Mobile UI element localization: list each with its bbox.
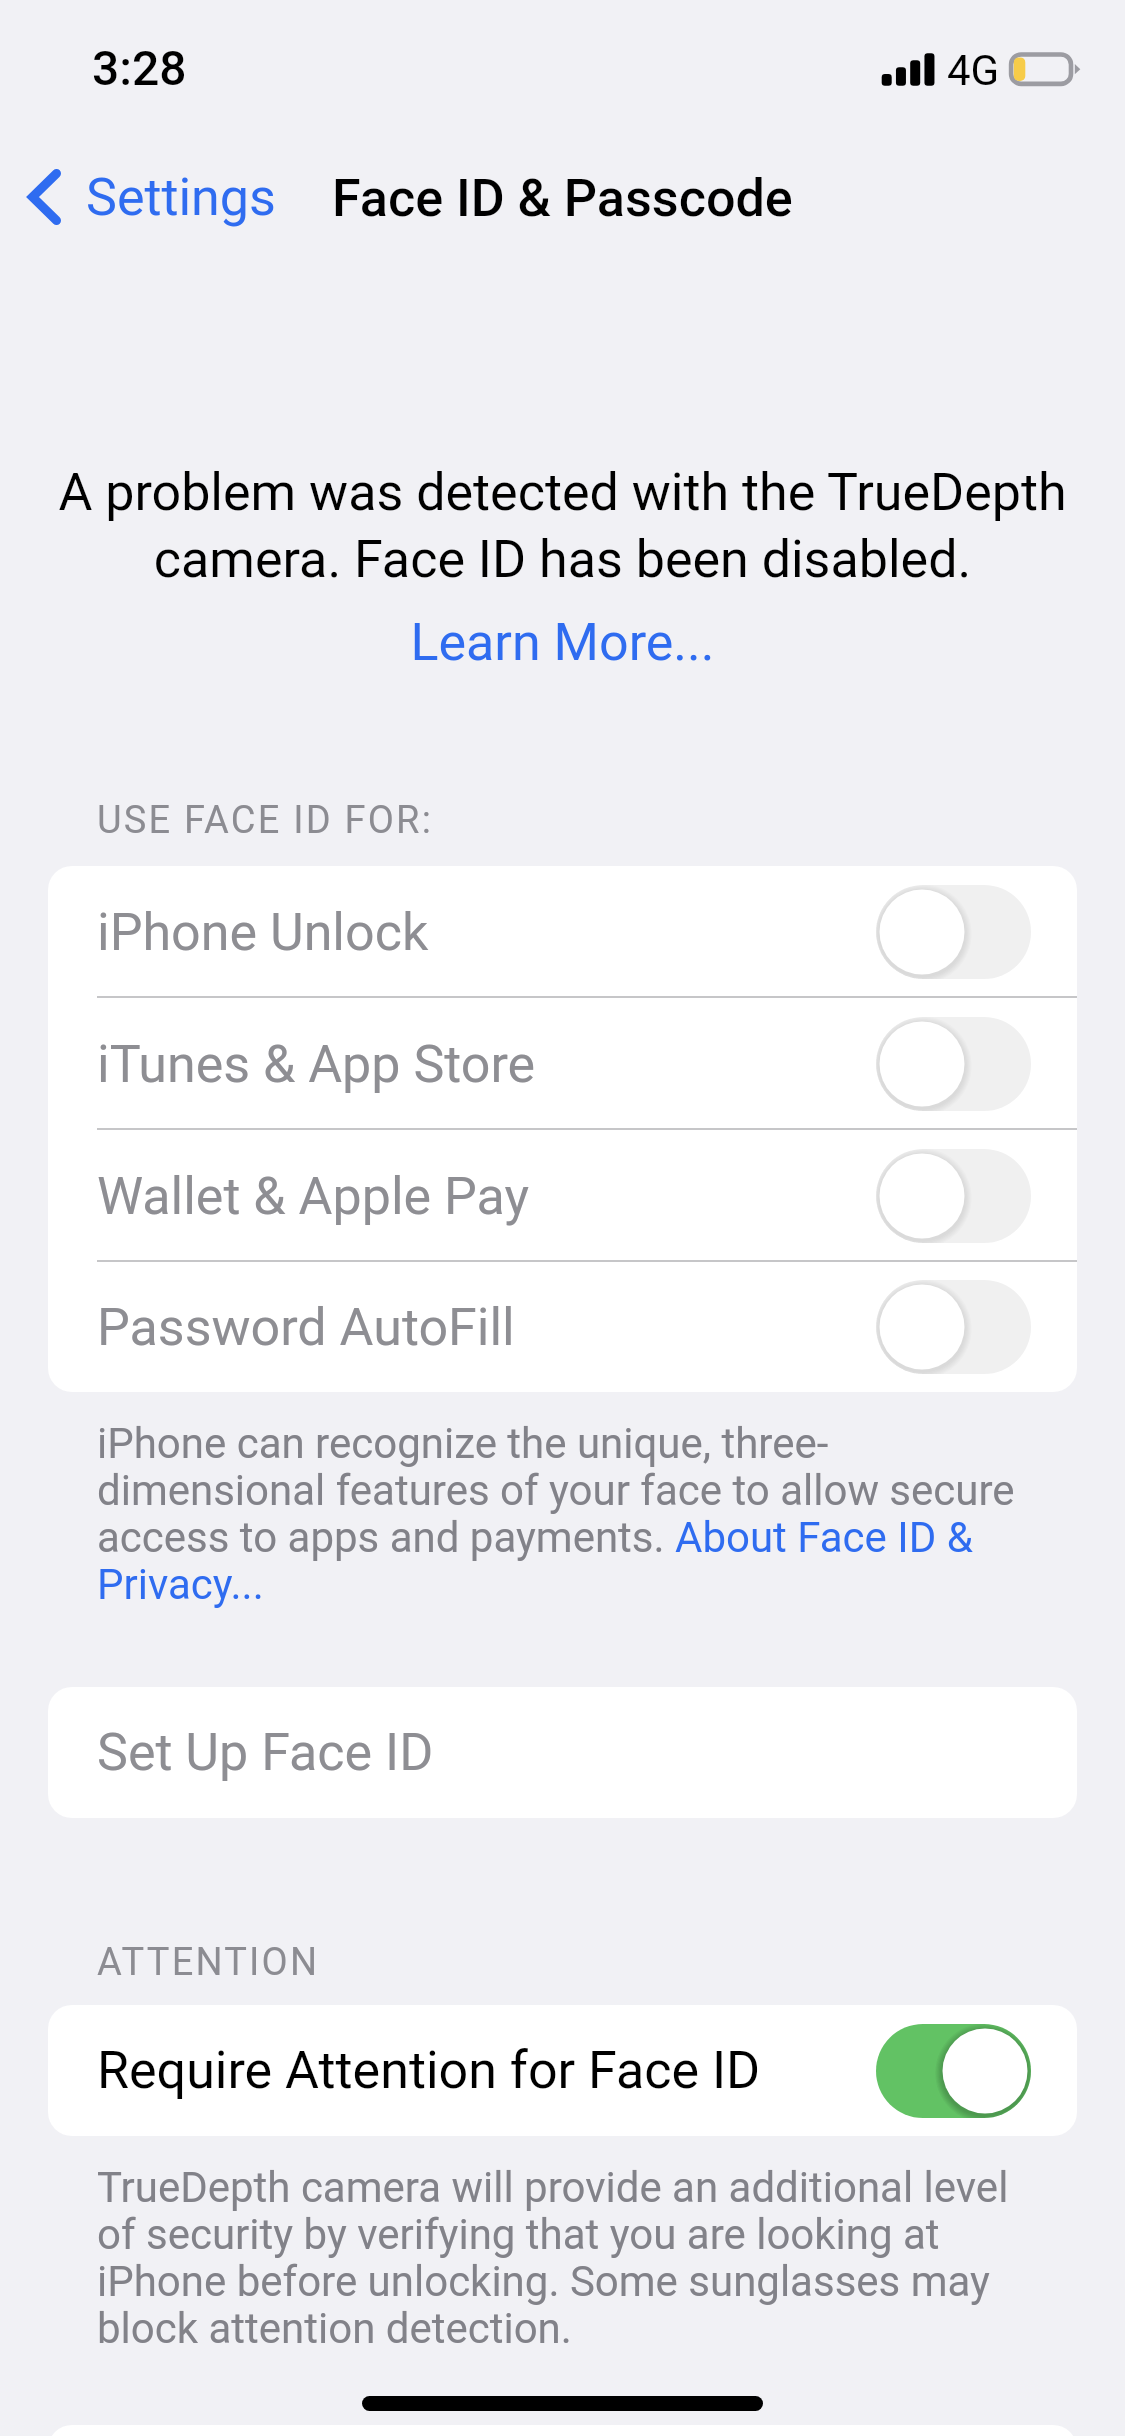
button[interactable]: Learn More... — [400, 602, 725, 682]
button[interactable]: Off — [876, 1149, 1031, 1243]
staticText: iTunes & App Store — [97, 1034, 536, 1095]
staticText: Set Up Face ID — [97, 1722, 434, 1783]
staticText: iPhone Unlock — [97, 902, 429, 963]
staticText: ATTENTION — [97, 1940, 320, 1985]
button[interactable]: Password AutoFill — [48, 1262, 1077, 1392]
button[interactable]: Off — [876, 1280, 1031, 1374]
staticText: 4G — [947, 46, 1000, 95]
button[interactable]: Back — [12, 152, 290, 242]
staticText: Password AutoFill — [97, 1297, 515, 1358]
other: Back — [28, 162, 61, 232]
staticText: TrueDepth camera will provide an additio… — [97, 2163, 1022, 2353]
button[interactable]: Set Up Face ID — [48, 1687, 1077, 1818]
staticText: Wallet & Apple Pay — [97, 1166, 530, 1227]
staticText: Require Attention for Face ID — [97, 2040, 761, 2101]
button[interactable]: iTunes & App Store — [48, 998, 1077, 1130]
button[interactable]: Off — [876, 1017, 1031, 1111]
staticText: A problem was detected with the TrueDept… — [50, 462, 1075, 590]
button[interactable]: On — [876, 2024, 1031, 2118]
button[interactable]: Off — [876, 885, 1031, 979]
staticText: Face ID & Passcode — [332, 168, 793, 229]
staticText: 3:28 — [92, 40, 187, 96]
staticText: Settings — [86, 167, 276, 228]
staticText: Learn More... — [410, 612, 715, 672]
button[interactable]: Require Attention for Face ID — [48, 2005, 1077, 2136]
button[interactable]: Wallet & Apple Pay — [48, 1130, 1077, 1262]
staticText: iPhone can recognize the unique, three-d… — [97, 1419, 1022, 1609]
staticText: USE FACE ID FOR: — [97, 798, 434, 843]
button[interactable]: iPhone Unlock — [48, 866, 1077, 998]
